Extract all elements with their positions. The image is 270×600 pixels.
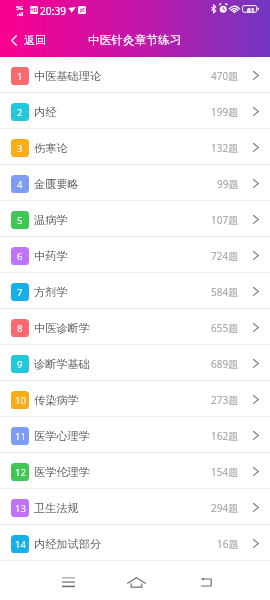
- button[interactable]: 14: [0, 525, 270, 560]
- staticText: 12: [15, 466, 26, 479]
- staticText: 724题: [211, 249, 239, 263]
- button[interactable]: 9: [0, 345, 270, 380]
- button[interactable]: Home: [116, 564, 156, 600]
- staticText: 方剂学: [34, 285, 68, 299]
- button[interactable]: 6: [0, 237, 270, 272]
- staticText: 返回: [24, 33, 46, 47]
- staticText: 中药学: [34, 249, 68, 263]
- staticText: 13: [15, 502, 26, 515]
- staticText: 温病学: [34, 213, 68, 227]
- staticText: 61: [247, 6, 255, 15]
- staticText: 1: [17, 70, 23, 83]
- button[interactable]: 3: [0, 129, 270, 164]
- staticText: 154题: [211, 465, 239, 479]
- staticText: 199题: [211, 105, 239, 119]
- staticText: 162题: [211, 429, 239, 443]
- staticText: 卫生法规: [34, 501, 79, 515]
- staticText: 内经加试部分: [34, 537, 102, 551]
- button[interactable]: 2: [0, 93, 270, 128]
- staticText: 107题: [211, 213, 239, 227]
- staticText: 传染病学: [34, 393, 79, 407]
- button[interactable]: 10: [0, 381, 270, 416]
- staticText: 20:39: [40, 4, 67, 18]
- button[interactable]: 1: [0, 57, 270, 92]
- staticText: 诊断学基础: [34, 357, 90, 371]
- staticText: 584题: [211, 285, 239, 299]
- staticText: 11: [15, 430, 26, 443]
- staticText: HD: [30, 7, 38, 14]
- staticText: 16题: [217, 537, 239, 551]
- staticText: 医学心理学: [34, 429, 90, 443]
- staticText: 10: [15, 394, 26, 407]
- staticText: 655题: [211, 321, 239, 335]
- button[interactable]: 11: [0, 417, 270, 452]
- button[interactable]: 7: [0, 273, 270, 308]
- staticText: 医学伦理学: [34, 465, 90, 479]
- staticText: 470题: [211, 69, 239, 83]
- staticText: 内经: [34, 105, 57, 119]
- staticText: 9: [17, 358, 23, 371]
- staticText: 6: [17, 250, 23, 263]
- staticText: 2: [17, 106, 23, 119]
- staticText: 中医基础理论: [34, 69, 102, 83]
- staticText: 294题: [211, 501, 239, 515]
- button[interactable]: 5: [0, 201, 270, 236]
- button[interactable]: 返回: [0, 27, 56, 53]
- button[interactable]: Back: [186, 564, 226, 600]
- button[interactable]: Recents: [48, 564, 88, 600]
- staticText: 689题: [211, 357, 239, 371]
- staticText: 5: [17, 214, 23, 227]
- staticText: 8: [17, 322, 23, 335]
- staticText: 5G: [16, 4, 24, 11]
- button[interactable]: 4: [0, 165, 270, 200]
- staticText: 中医针灸章节练习: [88, 33, 182, 48]
- button[interactable]: 13: [0, 489, 270, 524]
- staticText: 14: [15, 538, 26, 551]
- button[interactable]: 12: [0, 453, 270, 488]
- staticText: 273题: [211, 393, 239, 407]
- staticText: 金匮要略: [34, 177, 79, 191]
- staticText: 3: [17, 142, 23, 155]
- staticText: 99题: [217, 177, 239, 191]
- staticText: 中医诊断学: [34, 321, 90, 335]
- staticText: 132题: [211, 141, 239, 155]
- staticText: 7: [17, 286, 23, 299]
- staticText: 4: [17, 178, 23, 191]
- staticText: 伤寒论: [34, 141, 68, 155]
- button[interactable]: 8: [0, 309, 270, 344]
